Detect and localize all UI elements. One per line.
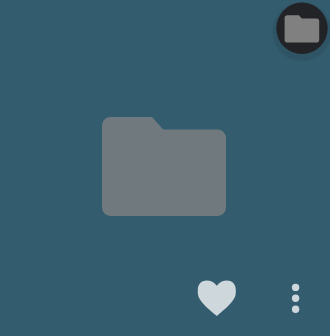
- button[interactable]: Favourite: [193, 275, 241, 323]
- button[interactable]: Folder badge: [270, 0, 330, 60]
- button[interactable]: Open folder: [102, 117, 226, 216]
- button[interactable]: More options: [272, 274, 320, 322]
